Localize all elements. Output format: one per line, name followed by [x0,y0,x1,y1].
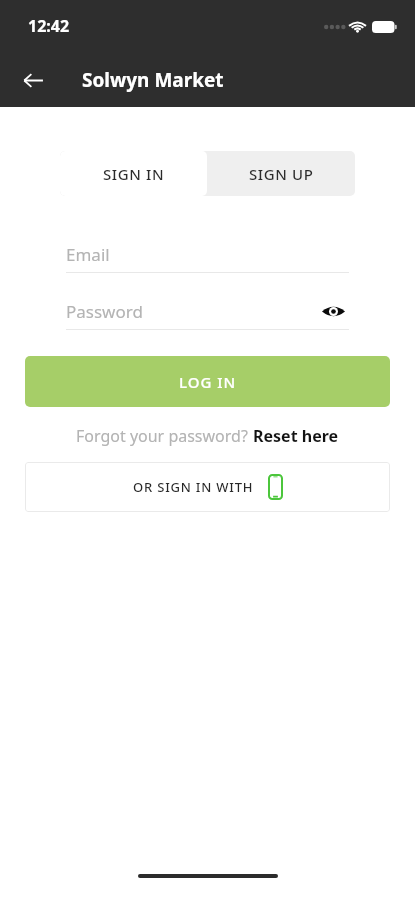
staticText: LOG IN [179,372,237,392]
button[interactable]: Back [14,61,52,99]
staticText: OR SIGN IN WITH [133,478,254,496]
button[interactable]: SIGN UP [207,151,355,196]
staticText: 12:42 [28,15,70,37]
button[interactable]: Password [66,293,349,330]
staticText: Reset here [253,425,339,447]
button[interactable]: Reset here [253,425,339,447]
staticText: Solwyn Market [82,67,224,93]
staticText: Forgot your password? [76,425,253,447]
button[interactable]: Email [66,236,349,273]
button[interactable]: Show password [317,295,349,327]
staticText: SIGN IN [103,164,165,184]
staticText: Password [66,300,143,323]
button[interactable]: OR SIGN IN WITH [25,462,390,512]
button[interactable]: SIGN IN [60,151,207,196]
staticText: SIGN UP [249,164,314,184]
button[interactable]: LOG IN [25,356,390,407]
staticText: Email [66,243,110,266]
